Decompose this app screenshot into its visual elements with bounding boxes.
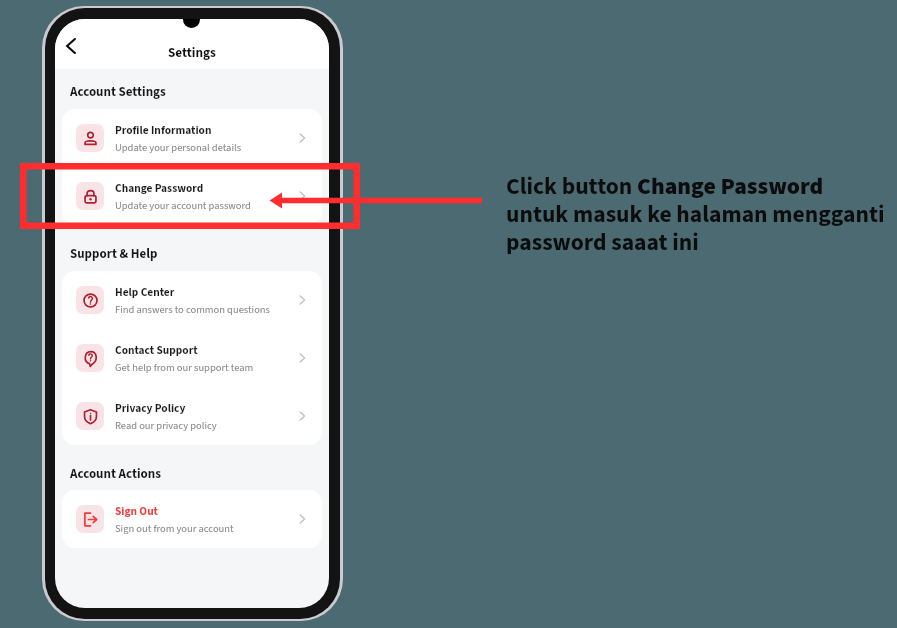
button[interactable]: Help Center — [62, 271, 322, 329]
staticText: Change Password — [115, 180, 204, 196]
staticText: Read our privacy policy — [115, 418, 217, 433]
staticText: Profile Information — [115, 122, 212, 138]
button[interactable]: Profile Information — [62, 109, 322, 167]
button[interactable]: Back — [56, 31, 86, 61]
staticText: Find answers to common questions — [115, 302, 270, 317]
button[interactable]: Privacy Policy — [62, 387, 322, 445]
staticText: Settings — [168, 43, 216, 62]
staticText: Update your personal details — [115, 140, 242, 155]
staticText: Account Actions — [70, 465, 161, 484]
staticText: Get help from our support team — [115, 360, 254, 375]
staticText: Help Center — [115, 284, 175, 300]
staticText: Update your account password — [115, 198, 251, 213]
staticText: Support & Help — [70, 245, 158, 264]
staticText: Sign Out — [115, 503, 158, 519]
staticText: Click button Change Password untuk masuk… — [506, 170, 885, 259]
button[interactable]: Sign Out — [62, 490, 322, 548]
staticText: Privacy Policy — [115, 400, 186, 416]
button[interactable]: Change Password — [62, 167, 322, 225]
staticText: Sign out from your account — [115, 521, 234, 536]
button[interactable]: Contact Support — [62, 329, 322, 387]
staticText: Contact Support — [115, 342, 198, 358]
staticText: Account Settings — [70, 83, 166, 102]
